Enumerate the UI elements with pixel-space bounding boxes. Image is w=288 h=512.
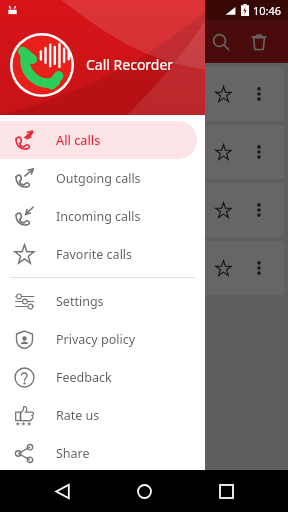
button[interactable]: Back — [42, 471, 82, 511]
staticText: Rate us — [56, 407, 100, 424]
button[interactable]: More options — [246, 81, 272, 107]
button[interactable]: Favorite — [210, 197, 236, 223]
button[interactable]: Favorite calls — [0, 235, 197, 273]
button[interactable]: Favorite — [210, 139, 236, 165]
button[interactable]: 2 — [4, 241, 284, 295]
button[interactable]: 4 — [4, 183, 284, 237]
staticText: Share — [56, 445, 90, 462]
staticText: Incoming calls — [56, 208, 141, 225]
staticText: 3 — [188, 143, 196, 161]
button[interactable]: 2 — [4, 67, 284, 121]
button[interactable]: More options — [246, 197, 272, 223]
staticText: Favorite calls — [56, 246, 133, 263]
staticText: Outgoing calls — [56, 170, 141, 187]
button[interactable]: Home — [124, 471, 164, 511]
button[interactable]: Settings — [0, 282, 197, 320]
button[interactable]: More options — [246, 139, 272, 165]
button[interactable]: Favorite — [210, 255, 236, 281]
button[interactable]: Search — [202, 23, 240, 61]
staticText: Privacy policy — [56, 331, 136, 348]
button[interactable]: Feedback — [0, 358, 197, 396]
button[interactable]: Privacy policy — [0, 320, 197, 358]
button[interactable]: Incoming calls — [0, 197, 197, 235]
button[interactable]: Favorite — [210, 81, 236, 107]
button[interactable]: Recents — [206, 471, 246, 511]
button[interactable]: Delete — [240, 23, 278, 61]
staticText: Feedback — [56, 369, 112, 386]
staticText: All calls — [56, 132, 101, 149]
staticText: Call Recorder — [86, 55, 174, 74]
button[interactable]: 3 — [4, 125, 284, 179]
button[interactable]: Rate us — [0, 396, 197, 434]
button[interactable]: Outgoing calls — [0, 159, 197, 197]
button[interactable]: More options — [246, 255, 272, 281]
button[interactable]: Share — [0, 434, 197, 472]
staticText: Settings — [56, 293, 104, 310]
button[interactable]: All calls — [0, 121, 197, 159]
staticText: 10:46 — [253, 3, 282, 18]
